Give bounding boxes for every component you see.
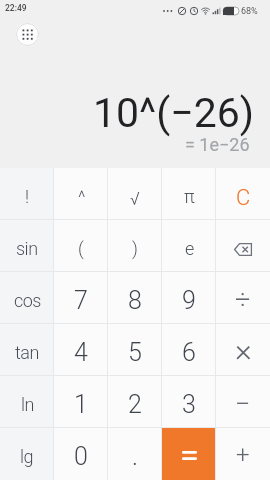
button[interactable]: 9 (162, 272, 216, 324)
staticText: 8 (128, 286, 142, 315)
button[interactable]: tan (0, 324, 54, 376)
staticText: C (236, 185, 251, 211)
button[interactable]: ÷ (216, 272, 270, 324)
button[interactable]: e (162, 220, 216, 272)
staticText: tan (15, 342, 39, 363)
staticText: ! (25, 186, 29, 207)
staticText: 68% (241, 6, 258, 17)
staticText: × (235, 331, 252, 369)
button[interactable]: ln (0, 376, 54, 428)
button[interactable] (162, 428, 216, 480)
staticText: 2 (128, 390, 142, 419)
button[interactable] (16, 23, 39, 46)
staticText: 5 (128, 338, 142, 367)
staticText: 10^(−26) (93, 89, 255, 137)
staticText: π (184, 186, 195, 207)
staticText: e (185, 238, 194, 259)
staticText: − (235, 388, 251, 420)
staticText: ^ (78, 187, 85, 208)
button[interactable]: 8 (108, 272, 162, 324)
staticText: . (132, 442, 138, 471)
button[interactable]: ) (108, 220, 162, 272)
button[interactable]: 5 (108, 324, 162, 376)
button[interactable]: ! (0, 168, 54, 220)
staticText: 7 (74, 286, 88, 315)
button[interactable]: 6 (162, 324, 216, 376)
button[interactable]: C (216, 168, 270, 220)
button[interactable]: lg (0, 428, 54, 480)
button[interactable]: cos (0, 272, 54, 324)
staticText: 22:49 (5, 3, 27, 13)
button[interactable]: 4 (54, 324, 108, 376)
staticText: 3 (182, 390, 196, 419)
staticText: lg (20, 446, 34, 467)
staticText: ( (78, 238, 84, 259)
staticText: cos (14, 290, 41, 311)
staticText: ln (21, 394, 34, 415)
button[interactable]: . (108, 428, 162, 480)
button[interactable]: 0 (54, 428, 108, 480)
button[interactable]: 3 (162, 376, 216, 428)
button[interactable]: × (216, 324, 270, 376)
staticText: = 1e−26 (185, 134, 250, 155)
button[interactable] (216, 220, 270, 272)
staticText: √ (130, 188, 140, 209)
button[interactable]: 1 (54, 376, 108, 428)
button[interactable]: √ (108, 168, 162, 220)
button[interactable]: ( (54, 220, 108, 272)
button[interactable]: ^ (54, 168, 108, 220)
button[interactable]: − (216, 376, 270, 428)
button[interactable]: π (162, 168, 216, 220)
staticText: sin (16, 238, 38, 259)
staticText: ÷ (235, 284, 251, 316)
staticText: 4 (74, 338, 88, 367)
button[interactable]: 7 (54, 272, 108, 324)
staticText: + (236, 441, 250, 469)
staticText: 1 (74, 390, 88, 419)
staticText: 9 (182, 286, 196, 315)
staticText: 6 (182, 338, 196, 367)
button[interactable]: 2 (108, 376, 162, 428)
staticText: ) (132, 238, 138, 259)
staticText: 0 (74, 442, 88, 471)
button[interactable]: + (216, 428, 270, 480)
button[interactable]: sin (0, 220, 54, 272)
